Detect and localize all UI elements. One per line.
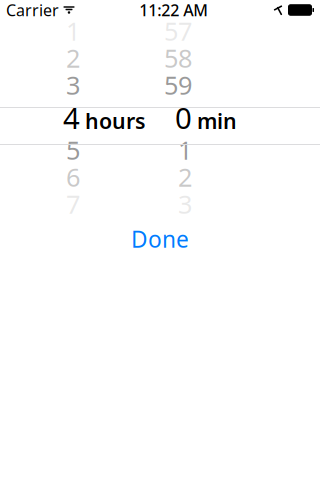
staticText: Done: [131, 224, 189, 254]
staticText: 3: [178, 187, 192, 221]
staticText: Carrier: [6, 0, 59, 21]
staticText: 11:22 AM: [139, 0, 208, 21]
staticText: 1: [178, 133, 192, 167]
staticText: 0: [175, 98, 192, 137]
staticText: 1: [66, 14, 80, 48]
staticText: 5: [66, 133, 80, 167]
staticText: 3: [66, 68, 80, 102]
staticText: 59: [164, 68, 192, 102]
button[interactable]: Done: [115, 216, 205, 262]
staticText: 2: [66, 41, 80, 75]
staticText: 2: [178, 160, 192, 194]
staticText: 7: [66, 187, 80, 221]
staticText: 57: [164, 14, 192, 48]
staticText: 6: [66, 160, 80, 194]
staticText: min: [197, 106, 237, 135]
staticText: 4: [63, 98, 80, 137]
staticText: 58: [164, 41, 192, 75]
staticText: hours: [85, 106, 146, 135]
